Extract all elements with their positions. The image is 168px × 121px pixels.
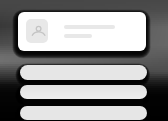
button[interactable]: Loading item bbox=[20, 106, 147, 120]
button[interactable]: Loading item bbox=[20, 85, 147, 99]
button[interactable] bbox=[18, 12, 146, 51]
button[interactable]: Loading item bbox=[20, 65, 147, 80]
